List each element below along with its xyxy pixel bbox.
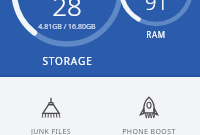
button[interactable]: Junk files [3, 94, 99, 135]
staticText: JUNK FILES [31, 127, 71, 135]
staticText: STORAGE [42, 54, 93, 68]
staticText: RAM [146, 29, 166, 40]
staticText: 28 [52, 0, 82, 23]
button[interactable]: 28 [12, 0, 122, 68]
staticText: 4.81GB / 16.80GB [38, 22, 96, 32]
button[interactable]: Phone boost [101, 94, 197, 135]
button[interactable]: 91 [120, 0, 192, 40]
staticText: 91 [145, 0, 168, 16]
staticText: PHONE BOOST [122, 127, 176, 135]
